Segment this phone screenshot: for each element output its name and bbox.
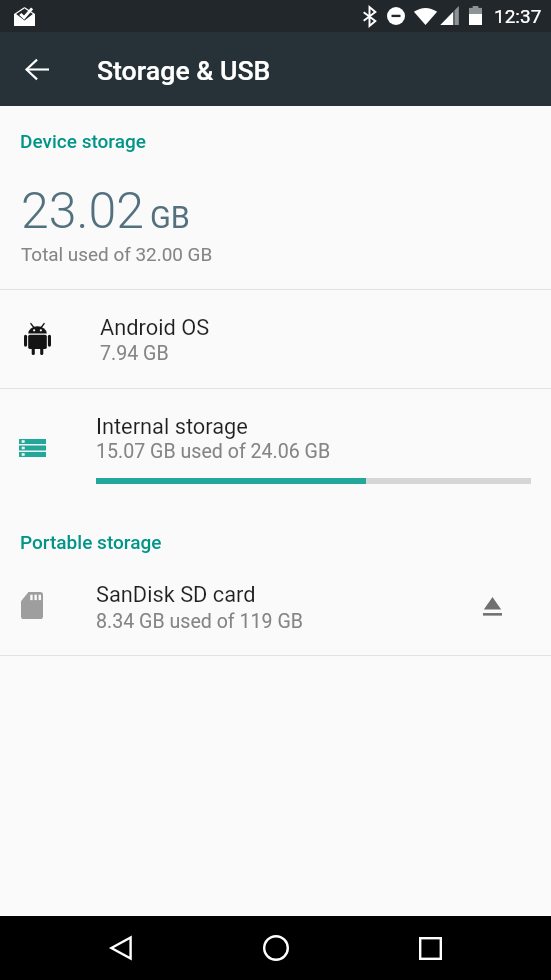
staticText: SanDisk SD card <box>96 582 256 608</box>
button[interactable]: Back <box>93 916 551 980</box>
staticText: 15.07 GB used of 24.06 GB <box>96 440 331 463</box>
staticText: Total used of 32.00 GB <box>21 243 213 265</box>
button[interactable]: Eject <box>468 582 516 630</box>
button[interactable]: Internal storage <box>0 389 551 515</box>
staticText: GB <box>150 200 190 236</box>
button[interactable]: Back <box>11 43 63 95</box>
staticText: Internal storage <box>96 414 248 440</box>
staticText: 12:37 <box>494 5 542 27</box>
staticText: Android OS <box>100 315 210 341</box>
button[interactable]: Recents <box>403 916 459 980</box>
staticText: 8.34 GB used of 119 GB <box>96 610 303 633</box>
staticText: Storage & USB <box>97 55 271 86</box>
staticText: 7.94 GB <box>100 342 169 365</box>
staticText: Device storage <box>20 130 146 152</box>
button[interactable]: Android OS <box>0 290 551 388</box>
staticText: Portable storage <box>20 531 162 553</box>
button[interactable]: Home <box>248 916 304 980</box>
staticText: 23.02 <box>21 182 144 241</box>
button[interactable]: SanDisk SD card <box>0 563 551 655</box>
